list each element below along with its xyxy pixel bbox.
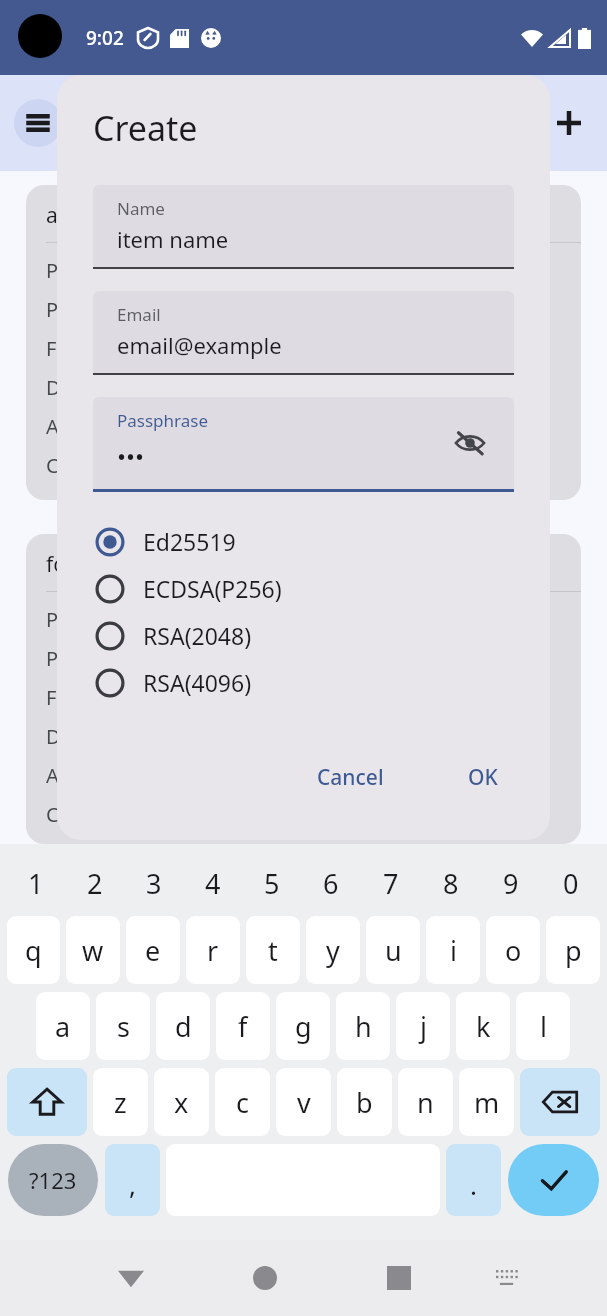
staticText: RSA(4096) bbox=[143, 667, 252, 698]
button[interactable]: g bbox=[276, 992, 330, 1060]
button[interactable]: Ed25519 bbox=[57, 518, 550, 565]
button[interactable]: x bbox=[154, 1068, 209, 1136]
staticText: f bbox=[238, 1008, 248, 1045]
button[interactable]: f bbox=[216, 992, 270, 1060]
button[interactable]: 7 bbox=[361, 854, 421, 912]
button[interactable]: Enter bbox=[508, 1144, 599, 1216]
button[interactable]: j bbox=[396, 992, 450, 1060]
button[interactable]: 8 bbox=[421, 854, 481, 912]
staticText: RSA(2048) bbox=[143, 620, 252, 651]
staticText: 2 bbox=[87, 865, 103, 902]
button[interactable]: 1 bbox=[6, 854, 65, 912]
button[interactable]: ECDSA(P256) bbox=[57, 565, 550, 612]
staticText: Public key bbox=[46, 296, 140, 323]
button[interactable]: Toggle password visibility bbox=[448, 421, 492, 465]
staticText: 7 bbox=[383, 865, 399, 902]
button[interactable]: k bbox=[456, 992, 510, 1060]
staticText: ECDSA(P256) bbox=[143, 573, 282, 604]
staticText: z bbox=[114, 1084, 127, 1121]
staticText: b bbox=[356, 1084, 373, 1121]
button[interactable]: Home bbox=[237, 1250, 293, 1306]
staticText: 5 bbox=[264, 865, 280, 902]
staticText: OK bbox=[468, 763, 498, 792]
staticText: s bbox=[117, 1008, 130, 1045]
button[interactable]: w bbox=[66, 916, 120, 984]
button[interactable]: o bbox=[486, 916, 540, 984]
button[interactable]: s bbox=[96, 992, 150, 1060]
staticText: Passphrase bbox=[117, 409, 209, 432]
staticText: t bbox=[268, 932, 278, 969]
button[interactable]: Name bbox=[93, 185, 514, 267]
staticText: foo bbox=[46, 550, 79, 579]
staticText: 8 bbox=[443, 865, 459, 902]
button[interactable]: RSA(2048) bbox=[57, 612, 550, 659]
button[interactable]: 3 bbox=[124, 854, 183, 912]
button[interactable]: u bbox=[366, 916, 420, 984]
button[interactable]: v bbox=[276, 1068, 331, 1136]
button[interactable]: r bbox=[186, 916, 240, 984]
button[interactable]: m bbox=[459, 1068, 514, 1136]
button[interactable]: 6 bbox=[301, 854, 361, 912]
button[interactable]: t bbox=[246, 916, 300, 984]
button[interactable]: y bbox=[306, 916, 360, 984]
button[interactable]: l bbox=[516, 992, 570, 1060]
staticText: item name bbox=[117, 224, 229, 254]
button[interactable]: Passphrase bbox=[93, 397, 514, 489]
button[interactable]: z bbox=[93, 1068, 148, 1136]
button[interactable]: 5 bbox=[242, 854, 301, 912]
button[interactable]: . bbox=[446, 1144, 501, 1216]
button[interactable]: n bbox=[398, 1068, 453, 1136]
button[interactable]: b bbox=[337, 1068, 392, 1136]
staticText: Ed25519 bbox=[143, 526, 236, 557]
button[interactable]: d bbox=[156, 992, 210, 1060]
button[interactable]: p bbox=[546, 916, 600, 984]
button[interactable]: h bbox=[336, 992, 390, 1060]
button[interactable]: Menu bbox=[14, 99, 62, 147]
staticText: 9:02 bbox=[86, 25, 124, 51]
button[interactable]: Cancel bbox=[303, 755, 398, 800]
staticText: n bbox=[417, 1084, 434, 1121]
staticText: Fingerprint bbox=[46, 335, 152, 362]
button[interactable]: RSA(4096) bbox=[57, 659, 550, 706]
button[interactable]: , bbox=[105, 1144, 160, 1216]
button[interactable]: 9 bbox=[481, 854, 541, 912]
staticText: Private key bbox=[46, 257, 149, 284]
button[interactable]: Add bbox=[545, 99, 593, 147]
staticText: u bbox=[385, 932, 402, 969]
staticText: 0 bbox=[563, 865, 579, 902]
button[interactable]: c bbox=[215, 1068, 270, 1136]
button[interactable]: 2 bbox=[65, 854, 124, 912]
staticText: Create bbox=[93, 105, 198, 151]
button[interactable]: Recent apps bbox=[371, 1250, 427, 1306]
staticText: , bbox=[129, 1167, 136, 1202]
staticText: 3 bbox=[146, 865, 162, 902]
staticText: Algorithm bbox=[46, 762, 141, 789]
staticText: 6 bbox=[323, 865, 339, 902]
staticText: ?123 bbox=[29, 1165, 77, 1195]
staticText: a bbox=[55, 1008, 71, 1045]
button[interactable]: e bbox=[126, 916, 180, 984]
button[interactable]: 4 bbox=[183, 854, 242, 912]
button[interactable]: 0 bbox=[541, 854, 601, 912]
button[interactable]: Shift bbox=[7, 1068, 87, 1136]
button[interactable]: i bbox=[426, 916, 480, 984]
staticText: 1 bbox=[28, 865, 44, 902]
staticText: i bbox=[450, 932, 457, 969]
staticText: Device id bbox=[46, 374, 131, 401]
staticText: 4 bbox=[205, 865, 221, 902]
staticText: l bbox=[540, 1008, 547, 1045]
staticText: e bbox=[145, 932, 161, 969]
button[interactable]: q bbox=[7, 916, 60, 984]
button[interactable]: ?123 bbox=[8, 1144, 98, 1216]
button[interactable]: Back bbox=[103, 1250, 159, 1306]
button[interactable]: Backspace bbox=[520, 1068, 600, 1136]
button[interactable]: Email bbox=[93, 291, 514, 373]
button[interactable]: OK bbox=[454, 755, 512, 800]
button[interactable]: Switch keyboard bbox=[482, 1253, 532, 1303]
staticText: q bbox=[25, 932, 42, 969]
staticText: Fingerprint bbox=[46, 684, 152, 711]
staticText: . bbox=[470, 1167, 477, 1202]
staticText: Cancel bbox=[317, 763, 384, 792]
button[interactable]: a bbox=[36, 992, 90, 1060]
